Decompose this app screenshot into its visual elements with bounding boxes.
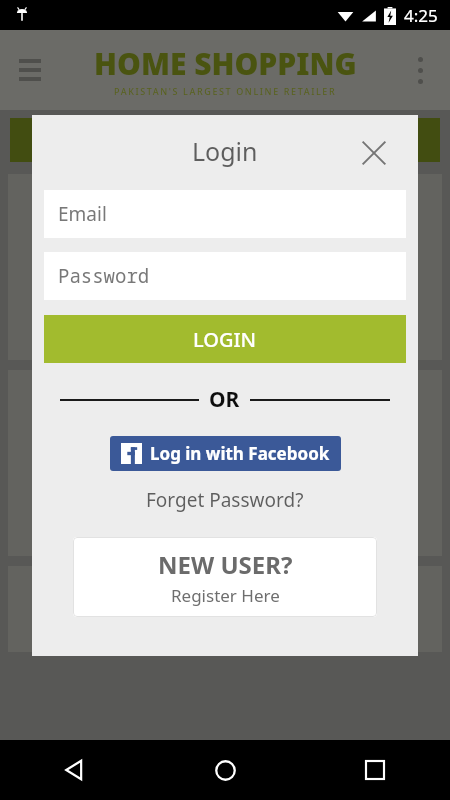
button[interactable]	[10, 118, 440, 162]
button[interactable]: Home	[150, 740, 300, 800]
staticText: Log in with Facebook	[150, 442, 330, 465]
button[interactable]: More options	[400, 50, 440, 90]
staticText: HOME SHOPPING	[94, 43, 357, 84]
button[interactable]: NEW USER?	[73, 537, 377, 617]
staticText: Register Here	[171, 584, 280, 607]
button[interactable]: Password	[44, 252, 406, 300]
button[interactable]: WATCHES COLLECTIONS	[229, 566, 442, 652]
staticText: OR	[209, 385, 240, 414]
button[interactable]: PERFUMES & FRAGRANCES	[8, 566, 221, 652]
staticText: Email	[58, 201, 107, 227]
staticText: NEW USER?	[158, 548, 293, 581]
staticText: Password	[58, 263, 150, 289]
staticText: PERFUMES & FRAGRANCES	[66, 574, 164, 612]
staticText: Forget Password?	[146, 487, 304, 513]
button[interactable]: Forget Password?	[138, 483, 312, 517]
button[interactable]: Back	[0, 740, 150, 800]
staticText: LOGIN	[193, 326, 257, 353]
staticText: 4:25	[404, 4, 438, 27]
button[interactable]: Log in with Facebook	[110, 436, 341, 471]
button[interactable]: Recent apps	[300, 740, 450, 800]
button[interactable]: LOGIN	[44, 315, 406, 363]
staticText: WATCHES COLLECTIONS	[284, 574, 387, 612]
button[interactable]: Menu	[8, 48, 52, 92]
button[interactable]: Email	[44, 190, 406, 238]
staticText: PAKISTAN'S LARGEST ONLINE RETAILER	[114, 85, 337, 97]
staticText: Login	[192, 134, 258, 168]
button[interactable]: Close	[354, 133, 394, 173]
